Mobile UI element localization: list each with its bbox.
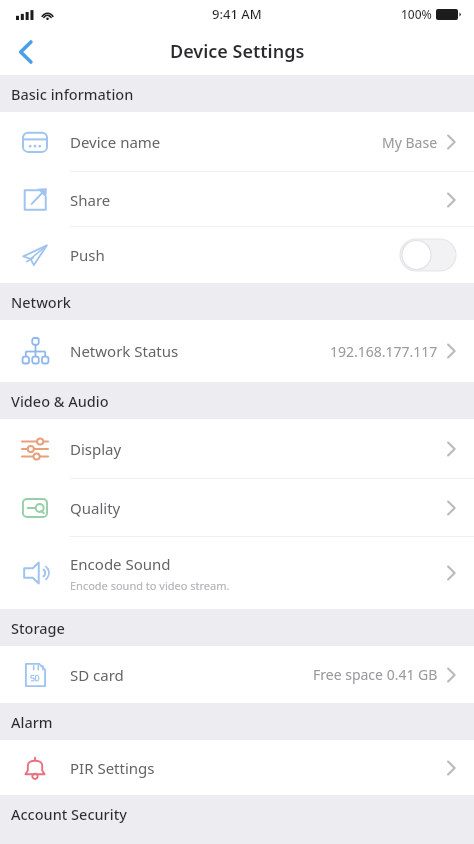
- staticText: Video & Audio: [11, 391, 109, 411]
- staticText: Push: [70, 245, 105, 265]
- staticText: Device name: [70, 132, 161, 152]
- button[interactable]: Back: [0, 28, 52, 75]
- staticText: Encode sound to video stream.: [70, 578, 230, 593]
- staticText: Account Security: [11, 804, 127, 824]
- staticText: PIR Settings: [70, 758, 155, 778]
- staticText: Network: [11, 292, 71, 312]
- staticText: Quality: [70, 498, 121, 518]
- button[interactable]: Share: [0, 172, 474, 227]
- staticText: Basic information: [11, 84, 134, 104]
- button[interactable]: Push: [0, 227, 474, 283]
- button[interactable]: Encode Sound: [0, 537, 474, 609]
- staticText: Share: [70, 190, 111, 210]
- button[interactable]: SD card: [0, 646, 474, 703]
- button[interactable]: Device name: [0, 112, 474, 172]
- button[interactable]: Network Status: [0, 320, 474, 382]
- button[interactable]: Quality: [0, 479, 474, 537]
- staticText: Free space 0.41 GB: [313, 665, 438, 684]
- staticText: Device Settings: [170, 39, 305, 64]
- staticText: My Base: [382, 133, 438, 152]
- staticText: 192.168.177.117: [330, 342, 438, 361]
- staticText: Encode Sound: [70, 554, 171, 574]
- button[interactable]: PIR Settings: [0, 740, 474, 795]
- staticText: SD card: [70, 665, 124, 685]
- staticText: Network Status: [70, 341, 179, 361]
- staticText: Alarm: [11, 712, 53, 732]
- button[interactable]: Display: [0, 419, 474, 479]
- staticText: 100%: [401, 6, 432, 22]
- staticText: Storage: [11, 618, 65, 638]
- staticText: 9:41 AM: [212, 5, 262, 23]
- button[interactable]: Push toggle: [400, 239, 456, 271]
- staticText: Display: [70, 439, 122, 459]
